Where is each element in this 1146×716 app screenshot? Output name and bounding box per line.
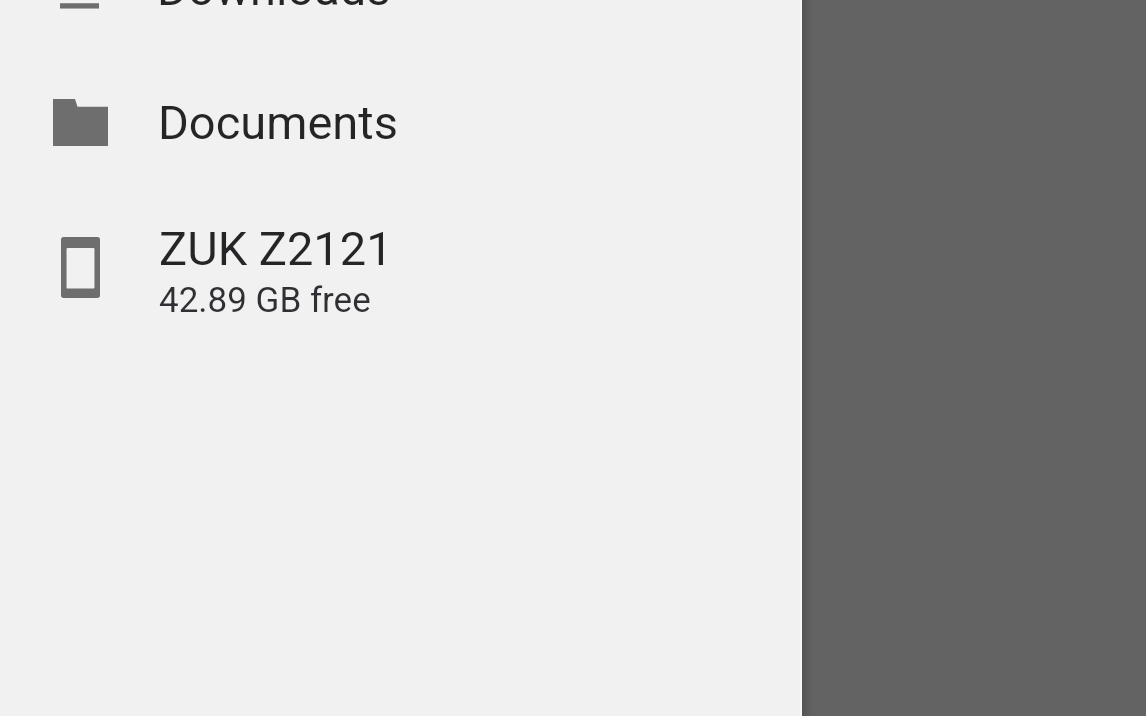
button[interactable]: Documents [0,53,802,192]
staticText: Downloads [157,0,391,16]
staticText: 42.89 GB free [159,280,371,321]
button[interactable]: Downloads [0,0,802,58]
staticText: Documents [158,95,398,150]
staticText: ZUK Z2121 [159,221,393,276]
button[interactable]: ZUK Z2121 [0,195,802,345]
